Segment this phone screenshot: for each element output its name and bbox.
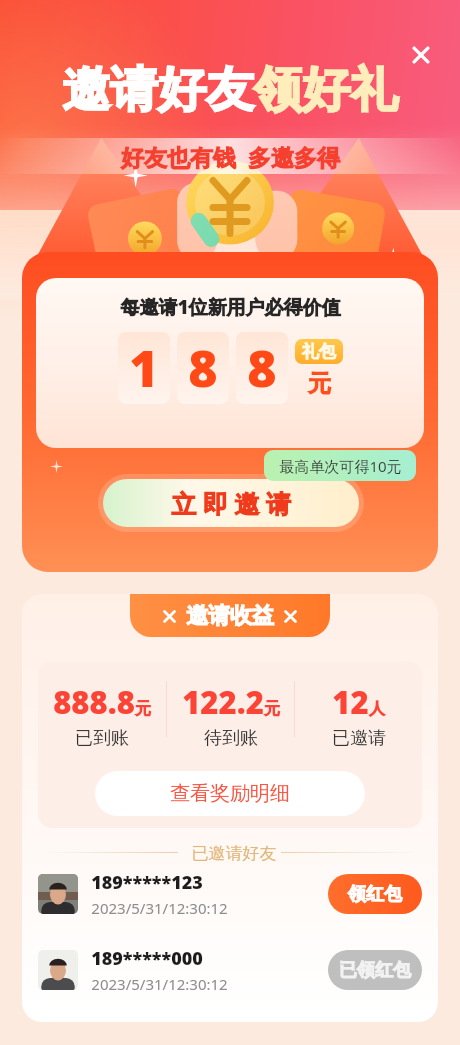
- staticText: 元: [135, 699, 151, 719]
- staticText: 每邀请1位新用户必得价值: [120, 294, 341, 320]
- staticText: 最高单次可得10元: [279, 456, 402, 476]
- button[interactable]: 已领红包: [328, 950, 422, 990]
- staticText: 礼包: [302, 341, 336, 362]
- staticText: 8: [188, 334, 218, 402]
- staticText: 邀请收益: [186, 602, 274, 630]
- button[interactable]: 邀请收益: [130, 594, 330, 637]
- staticText: 2023/5/31/12:30:12: [91, 898, 228, 918]
- button[interactable]: 查看奖励明细: [95, 771, 365, 816]
- staticText: 查看奖励明细: [170, 781, 290, 806]
- staticText: 1: [129, 334, 159, 402]
- staticText: 领好礼: [254, 60, 398, 120]
- button[interactable]: 立 即 邀 请: [103, 479, 359, 527]
- staticText: 已邀请: [332, 727, 386, 750]
- staticText: 邀请好友: [62, 60, 254, 120]
- staticText: 人: [369, 699, 385, 719]
- staticText: 元: [264, 699, 280, 719]
- staticText: 待到账: [204, 727, 258, 750]
- staticText: 已邀请好友: [178, 841, 281, 864]
- staticText: 122.2: [182, 681, 264, 723]
- staticText: 2023/5/31/12:30:12: [91, 974, 228, 994]
- staticText: 12: [332, 681, 369, 723]
- staticText: 已到账: [75, 727, 129, 750]
- button[interactable]: 领红包: [328, 874, 422, 914]
- staticText: 元: [308, 369, 331, 398]
- staticText: 189*****000: [91, 946, 203, 971]
- staticText: 8: [247, 334, 277, 402]
- staticText: 好友也有钱 多邀多得: [121, 141, 340, 172]
- button[interactable]: Close: [406, 40, 436, 70]
- button[interactable]: 最高单次可得10元: [264, 450, 416, 481]
- staticText: 189*****123: [91, 870, 203, 895]
- staticText: 已领红包: [339, 959, 411, 982]
- staticText: 领红包: [348, 883, 402, 906]
- staticText: 立 即 邀 请: [171, 486, 291, 520]
- staticText: 888.8: [53, 681, 135, 723]
